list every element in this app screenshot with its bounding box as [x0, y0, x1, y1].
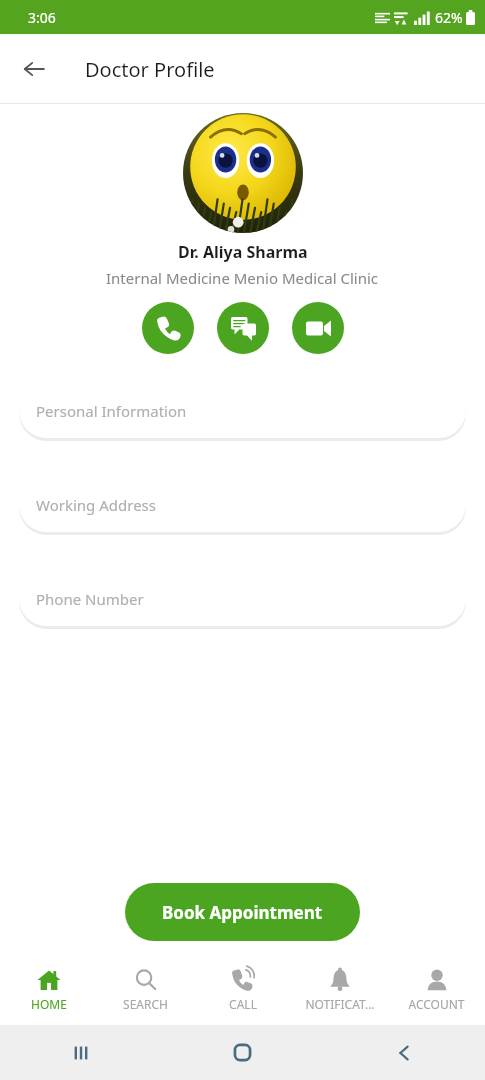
button[interactable]: Back [323, 1025, 485, 1080]
button[interactable]: HOME [0, 955, 97, 1025]
staticText: 62% [435, 8, 463, 27]
button[interactable]: Video call [292, 302, 344, 354]
button[interactable]: Book Appointment [125, 883, 360, 941]
button[interactable]: ACCOUNT [388, 955, 485, 1025]
staticText: CALL [229, 996, 257, 1012]
button[interactable]: Back [12, 47, 56, 91]
button[interactable]: NOTIFICAT... [291, 955, 388, 1025]
staticText: Phone Number [36, 589, 144, 609]
staticText: Book Appointment [162, 901, 323, 924]
button[interactable]: Chat [217, 302, 269, 354]
staticText: 3:06 [28, 8, 56, 27]
staticText: HOME [31, 996, 67, 1012]
button[interactable]: Call [142, 302, 194, 354]
staticText: SEARCH [123, 996, 168, 1012]
staticText: Dr. Aliya Sharma [178, 241, 308, 263]
button[interactable]: Recent apps [0, 1025, 161, 1080]
button[interactable]: SEARCH [97, 955, 194, 1025]
staticText: Internal Medicine Menio Medical Clinic [106, 268, 379, 288]
staticText: Personal Information [36, 401, 187, 421]
staticText: ACCOUNT [408, 996, 465, 1012]
button[interactable]: Working Address [19, 477, 466, 532]
button[interactable]: CALL [194, 955, 291, 1025]
staticText: Working Address [36, 495, 156, 515]
staticText: NOTIFICAT... [305, 996, 375, 1012]
button[interactable]: Phone Number [19, 571, 466, 626]
staticText: Doctor Profile [85, 56, 215, 83]
button[interactable]: Home [161, 1025, 323, 1080]
button[interactable]: Personal Information [19, 383, 466, 438]
